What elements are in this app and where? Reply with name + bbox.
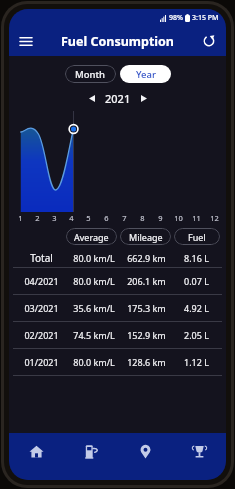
- staticText: 2: [35, 213, 40, 223]
- button[interactable]: Fuel: [64, 433, 118, 469]
- staticText: 74.5 km/L: [73, 329, 115, 341]
- button[interactable]: Menu: [14, 29, 38, 53]
- button[interactable]: Refresh: [197, 29, 221, 53]
- button[interactable]: Next year: [135, 89, 153, 107]
- staticText: 80.0 km/L: [73, 252, 115, 264]
- staticText: 7: [122, 213, 127, 223]
- staticText: 11: [192, 213, 201, 223]
- staticText: 152.9 km: [127, 329, 166, 341]
- staticText: Mileage: [129, 231, 163, 243]
- staticText: 9: [158, 213, 163, 223]
- staticText: Total: [30, 251, 53, 265]
- button[interactable]: 03/2021: [9, 295, 226, 321]
- staticText: 3:15 PM: [192, 13, 219, 23]
- staticText: 02/2021: [24, 329, 59, 341]
- staticText: 128.6 km: [127, 356, 166, 368]
- staticText: 8: [140, 213, 145, 223]
- button[interactable]: Month: [65, 65, 116, 83]
- staticText: 3: [52, 213, 57, 223]
- button[interactable]: Places: [118, 433, 172, 469]
- staticText: 4: [69, 213, 74, 223]
- staticText: Fuel Consumption: [61, 33, 174, 50]
- button[interactable]: Previous year: [83, 89, 101, 107]
- button[interactable]: 02/2021: [9, 322, 226, 348]
- button[interactable]: Achievements: [172, 433, 226, 469]
- staticText: 6: [104, 213, 109, 223]
- button[interactable]: Home: [9, 433, 64, 469]
- staticText: 1.12 L: [184, 356, 209, 368]
- staticText: Year: [136, 68, 156, 81]
- button[interactable]: Fuel: [174, 228, 220, 245]
- staticText: 175.3 km: [127, 302, 166, 314]
- staticText: 662.9 km: [127, 252, 166, 264]
- staticText: Average: [74, 231, 109, 243]
- staticText: 2.05 L: [184, 329, 209, 341]
- button[interactable]: Mileage: [120, 228, 171, 245]
- staticText: 12: [210, 213, 219, 223]
- button[interactable]: Total: [9, 249, 226, 267]
- staticText: 04/2021: [24, 275, 59, 287]
- button[interactable]: 01/2021: [9, 349, 226, 375]
- staticText: 206.1 km: [127, 275, 166, 287]
- staticText: Month: [75, 68, 106, 81]
- staticText: 10: [174, 213, 183, 223]
- staticText: 80.0 km/L: [73, 275, 115, 287]
- staticText: 35.6 km/L: [73, 302, 115, 314]
- staticText: 8.16 L: [184, 252, 209, 264]
- staticText: 2021: [105, 91, 131, 106]
- staticText: 98%: [169, 13, 183, 23]
- staticText: 1: [18, 213, 23, 223]
- staticText: 0.07 L: [184, 275, 209, 287]
- button[interactable]: Average: [66, 228, 117, 245]
- staticText: 03/2021: [24, 302, 59, 314]
- button[interactable]: Year: [120, 65, 171, 83]
- staticText: 5: [86, 213, 91, 223]
- button[interactable]: 04/2021: [9, 268, 226, 294]
- staticText: 80.0 km/L: [73, 356, 115, 368]
- staticText: 01/2021: [24, 356, 59, 368]
- staticText: 4.92 L: [184, 302, 209, 314]
- staticText: Fuel: [188, 231, 206, 243]
